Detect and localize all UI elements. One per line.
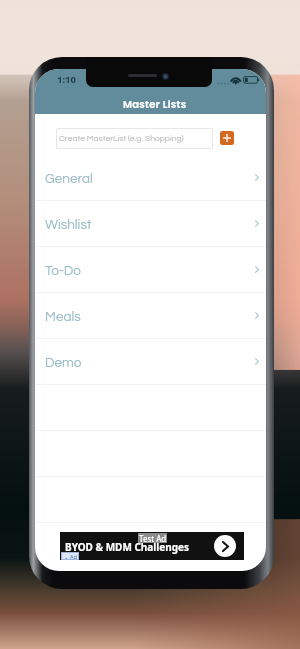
button[interactable]: Wishlist [35, 201, 266, 247]
button[interactable]: Create MasterList (e.g. Shopping) [56, 128, 213, 149]
staticText: 1:10 [57, 73, 76, 86]
staticText: BYOD & MDM Challenges [65, 540, 190, 554]
button[interactable]: Meals [35, 293, 266, 339]
button[interactable]: Ad choices [61, 552, 79, 560]
staticText: Test Ad [139, 533, 167, 543]
other: Open ad [214, 535, 236, 557]
button[interactable]: Add MasterList [220, 131, 234, 145]
staticText: Demo [45, 356, 82, 370]
staticText: To-Do [45, 264, 81, 278]
button[interactable]: BYOD & MDM Challenges [60, 532, 244, 560]
button[interactable]: General [35, 155, 266, 201]
staticText: Meals [45, 310, 81, 324]
staticText: Wishlist [45, 218, 92, 232]
staticText: Master Lists [123, 97, 187, 111]
staticText: Create MasterList (e.g. Shopping) [59, 134, 184, 143]
button[interactable]: To-Do [35, 247, 266, 293]
staticText: General [45, 172, 93, 186]
button[interactable]: Demo [35, 339, 266, 385]
staticText: ⌄ Ad [64, 553, 77, 560]
